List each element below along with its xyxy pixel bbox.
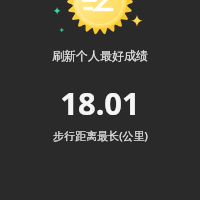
staticText: 步行距离最长(公里)	[53, 128, 148, 143]
staticText: 刷新个人最好成绩	[52, 48, 148, 63]
button[interactable]: Achievement medal	[0, 0, 200, 46]
staticText: 18.01	[60, 82, 140, 124]
